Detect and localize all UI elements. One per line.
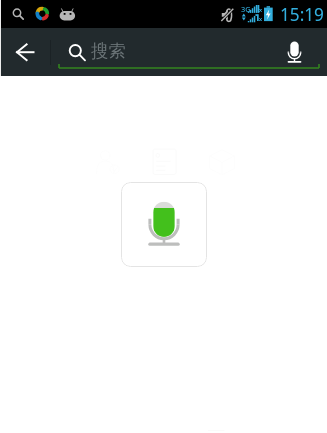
- staticText: 3G: [241, 4, 251, 14]
- staticText: 15:19: [280, 3, 324, 26]
- button[interactable]: Voice search: [121, 182, 207, 267]
- button[interactable]: Back: [0, 28, 50, 76]
- staticText: 搜索: [91, 40, 126, 62]
- button[interactable]: Voice input: [272, 28, 318, 76]
